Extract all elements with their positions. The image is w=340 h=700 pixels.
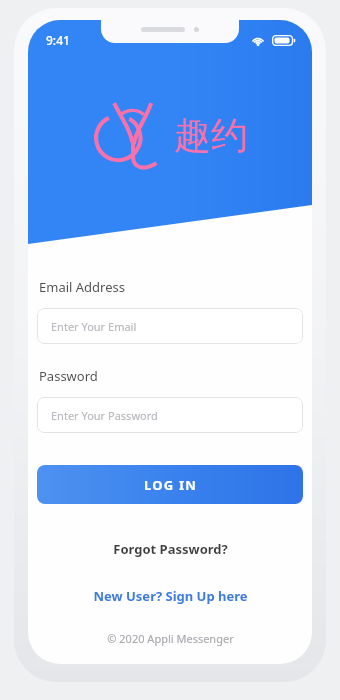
button[interactable]: Forgot Password? [37, 540, 303, 558]
staticText: New User? Sign Up here [93, 587, 248, 605]
staticText: Enter Your Password [51, 408, 158, 423]
staticText: Forgot Password? [113, 540, 228, 558]
button[interactable]: LOG IN [37, 465, 303, 504]
staticText: Email Address [39, 278, 125, 296]
button[interactable]: Enter Your Email [37, 308, 303, 344]
staticText: 9:41 [46, 32, 70, 48]
staticText: Password [39, 367, 98, 385]
staticText: LOG IN [144, 476, 197, 494]
staticText: © 2020 Appli Messenger [107, 631, 234, 646]
staticText: 趣约 [174, 112, 248, 159]
button[interactable]: New User? Sign Up here [37, 587, 303, 605]
staticText: Enter Your Email [51, 319, 137, 334]
button[interactable]: Enter Your Password [37, 397, 303, 433]
